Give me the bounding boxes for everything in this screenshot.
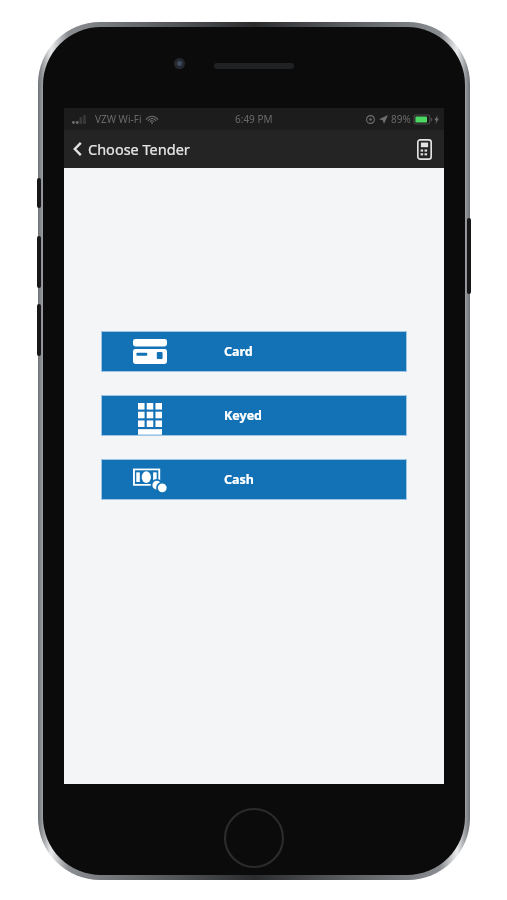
- staticText: VZW Wi-Fi: [95, 112, 142, 126]
- staticText: 89%: [391, 112, 411, 126]
- staticText: Choose Tender: [88, 139, 190, 159]
- staticText: Cash: [224, 471, 254, 488]
- staticText: 6:49 PM: [235, 112, 273, 126]
- button[interactable]: Card reader: [413, 135, 436, 164]
- button[interactable]: Keyed: [101, 395, 407, 436]
- button[interactable]: Choose Tender: [64, 135, 200, 163]
- button[interactable]: Cash: [101, 459, 407, 500]
- staticText: Card: [224, 343, 253, 360]
- button[interactable]: Card: [101, 331, 407, 372]
- staticText: Keyed: [224, 407, 263, 424]
